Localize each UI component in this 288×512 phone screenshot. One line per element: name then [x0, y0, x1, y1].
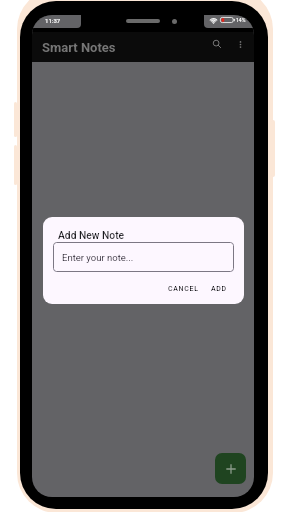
- staticText: ADD: [211, 285, 227, 293]
- button[interactable]: Enter your note...: [53, 242, 234, 272]
- staticText: 11:37: [45, 17, 61, 24]
- button[interactable]: CANCEL: [162, 282, 205, 296]
- button[interactable]: ADD: [205, 282, 233, 296]
- button[interactable]: Add note: [215, 453, 246, 484]
- staticText: Add New Note: [58, 229, 125, 241]
- staticText: CANCEL: [168, 285, 199, 293]
- staticText: 14%: [236, 17, 246, 23]
- button[interactable]: More options: [230, 34, 250, 54]
- staticText: Smart Notes: [42, 40, 116, 55]
- button[interactable]: Search: [207, 34, 227, 54]
- staticText: Enter your note...: [62, 252, 134, 263]
